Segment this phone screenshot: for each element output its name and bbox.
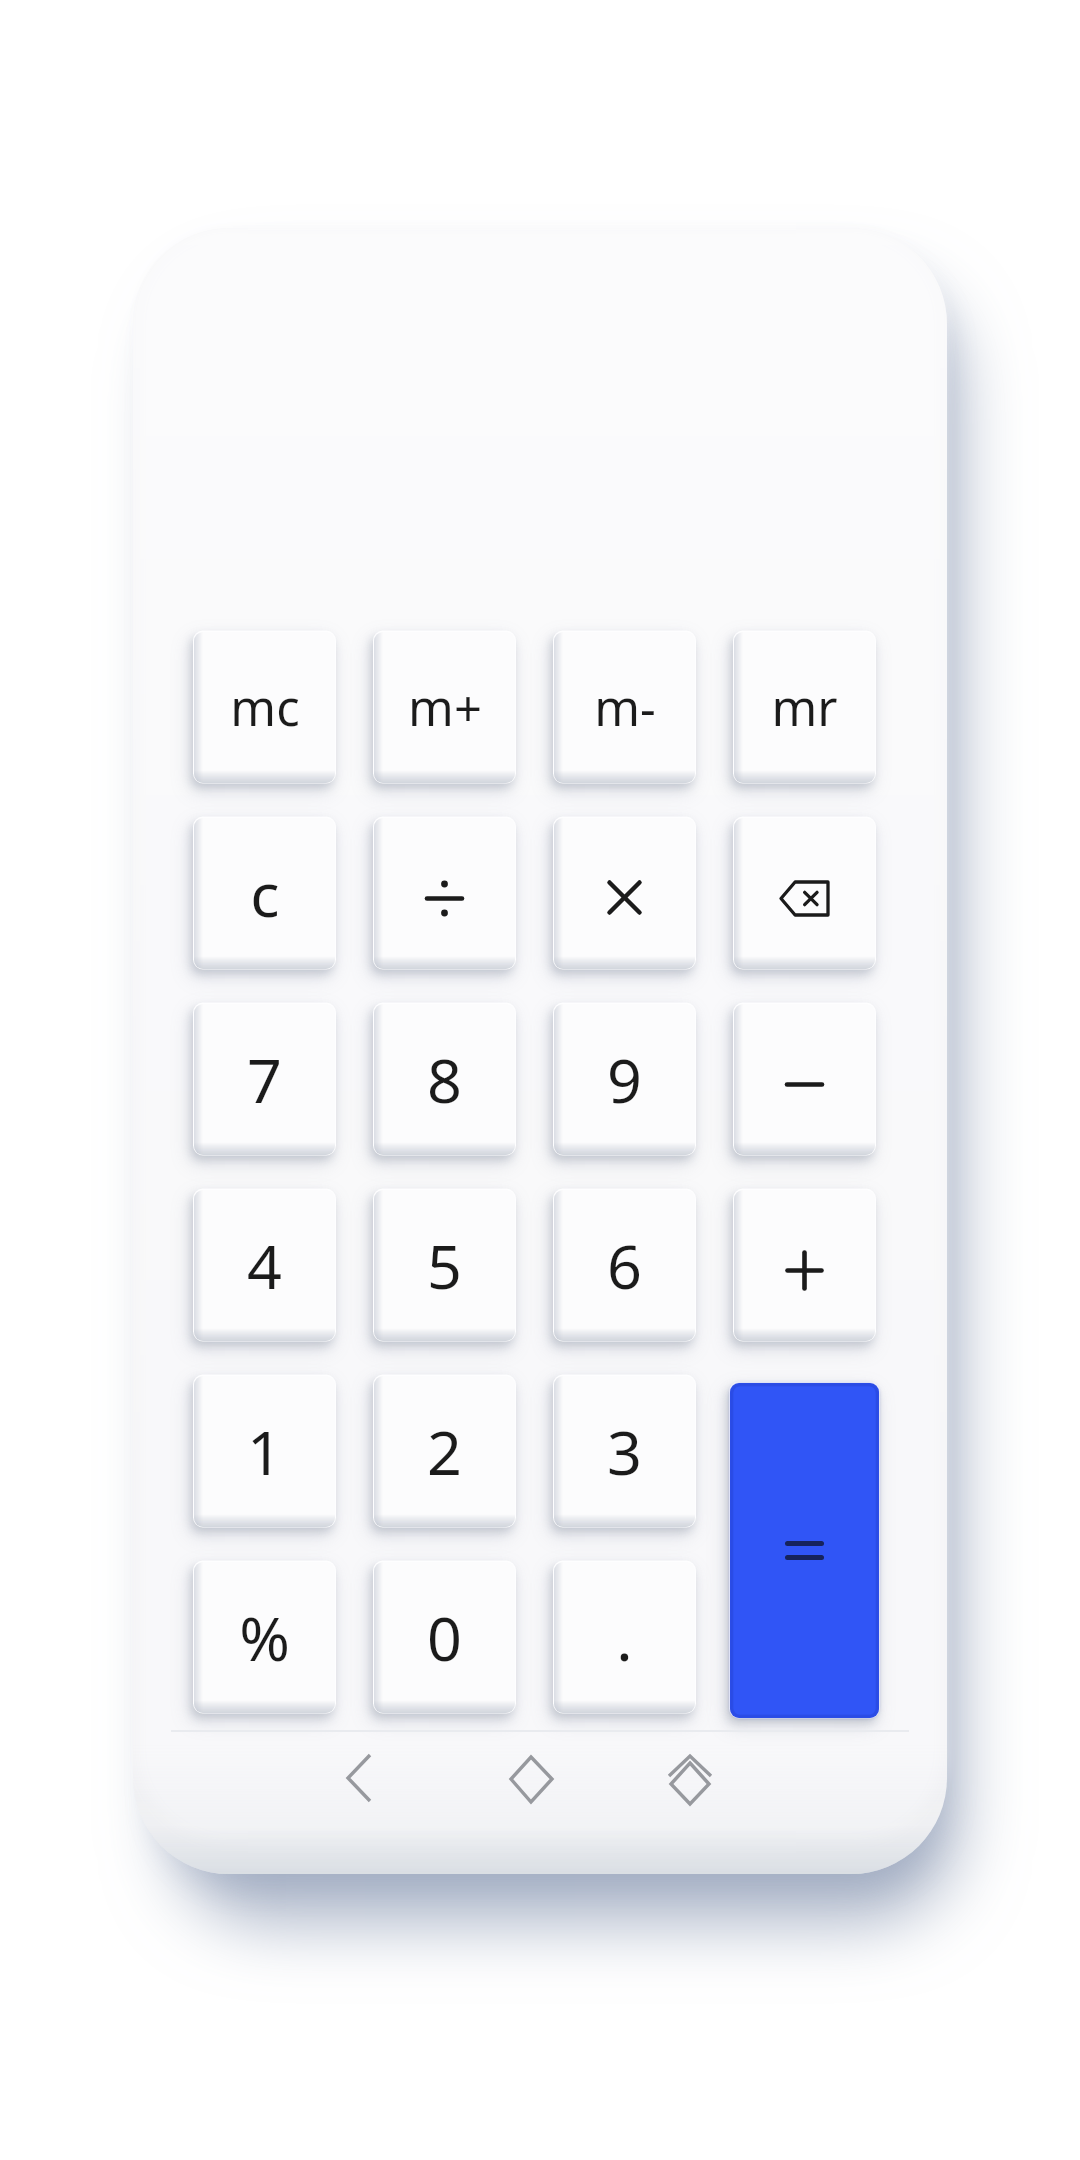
button[interactable]: c	[194, 818, 335, 969]
button[interactable]: .	[554, 1562, 695, 1713]
button[interactable]: %	[194, 1562, 335, 1713]
staticText: 0	[427, 1596, 462, 1679]
button[interactable]: 5	[374, 1190, 515, 1341]
button[interactable]: 7	[194, 1004, 335, 1155]
button[interactable]: m-	[554, 632, 695, 783]
button[interactable]: Minus	[734, 1004, 875, 1155]
staticText: .	[616, 1596, 633, 1679]
button[interactable]: Backspace	[734, 818, 875, 969]
button[interactable]: Back	[304, 1723, 414, 1833]
button[interactable]: 3	[554, 1376, 695, 1527]
button[interactable]: 6	[554, 1190, 695, 1341]
button[interactable]: Plus	[734, 1190, 875, 1341]
staticText: 1	[247, 1410, 282, 1493]
button[interactable]: Equals	[730, 1383, 879, 1718]
button[interactable]: m+	[374, 632, 515, 783]
staticText: mc	[230, 674, 300, 741]
staticText: 2	[427, 1410, 462, 1493]
button[interactable]: Multiply	[554, 818, 695, 969]
staticText: 8	[427, 1038, 462, 1121]
staticText: m-	[594, 674, 656, 741]
staticText: %	[239, 1596, 290, 1679]
staticText: 4	[247, 1224, 282, 1307]
staticText: 9	[607, 1038, 642, 1121]
staticText: m+	[408, 674, 482, 741]
staticText: 5	[427, 1224, 462, 1307]
button[interactable]: 2	[374, 1376, 515, 1527]
button[interactable]: mr	[734, 632, 875, 783]
button[interactable]: Home	[476, 1724, 586, 1834]
button[interactable]: 9	[554, 1004, 695, 1155]
button[interactable]: 8	[374, 1004, 515, 1155]
button[interactable]: Recents	[635, 1725, 745, 1835]
button[interactable]: 1	[194, 1376, 335, 1527]
button[interactable]: Divide	[374, 818, 515, 969]
staticText: c	[250, 852, 280, 935]
staticText: 6	[607, 1224, 642, 1307]
button[interactable]: mc	[194, 632, 335, 783]
staticText: mr	[771, 674, 838, 741]
button[interactable]: 0	[374, 1562, 515, 1713]
staticText: 7	[247, 1038, 282, 1121]
staticText: 3	[607, 1410, 642, 1493]
button[interactable]: 4	[194, 1190, 335, 1341]
